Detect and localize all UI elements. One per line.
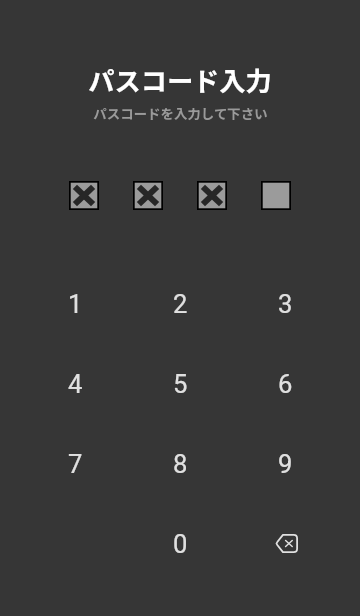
staticText: 8	[173, 449, 188, 479]
button[interactable]: 4	[41, 350, 109, 418]
staticText: パスコードを入力して下さい	[93, 103, 268, 122]
button[interactable]: 1	[41, 270, 109, 338]
staticText: 4	[68, 369, 83, 399]
button[interactable]: Entered digit	[197, 181, 227, 210]
button[interactable]: 8	[146, 430, 214, 498]
staticText: 9	[278, 449, 293, 479]
button[interactable]: Entered digit	[133, 181, 163, 210]
staticText: 6	[278, 369, 293, 399]
button[interactable]: 3	[251, 270, 319, 338]
button[interactable]: 7	[41, 430, 109, 498]
staticText: 7	[68, 449, 83, 479]
staticText: 5	[173, 369, 188, 399]
staticText: 2	[173, 289, 188, 319]
button[interactable]: Entered digit	[69, 181, 99, 210]
button[interactable]: 6	[251, 350, 319, 418]
button[interactable]: 9	[251, 430, 319, 498]
button[interactable]: 5	[146, 350, 214, 418]
button[interactable]: 2	[146, 270, 214, 338]
staticText: 3	[278, 289, 293, 319]
button[interactable]: Delete last digit	[251, 510, 319, 578]
button[interactable]: 0	[146, 510, 214, 578]
staticText: パスコード入力	[88, 61, 272, 95]
staticText: 1	[68, 289, 83, 319]
button[interactable]: Empty digit slot	[261, 181, 291, 210]
staticText: 0	[173, 529, 188, 559]
